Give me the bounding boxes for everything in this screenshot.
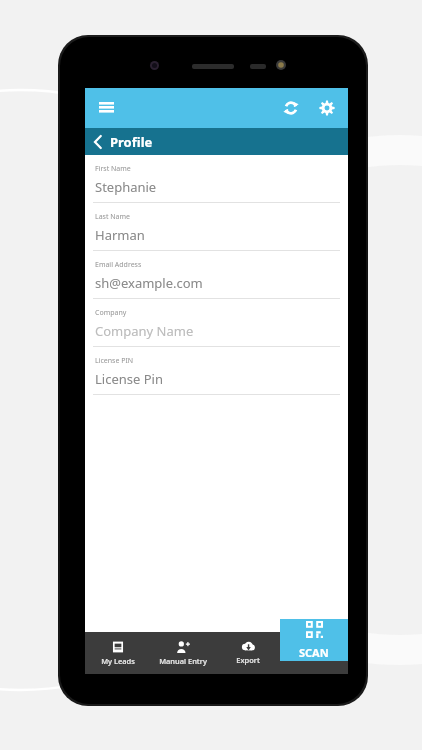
staticText: License PIN — [95, 356, 134, 366]
staticText: Harman — [95, 226, 145, 244]
button[interactable]: SCAN — [280, 619, 348, 661]
staticText: sh@example.com — [95, 274, 203, 292]
button[interactable]: Profile — [85, 128, 348, 155]
staticText: Profile — [110, 133, 153, 151]
staticText: Email Address — [95, 260, 142, 270]
staticText: First Name — [95, 164, 131, 174]
staticText: License Pin — [95, 370, 163, 388]
button[interactable]: Menu — [90, 92, 122, 124]
staticText: Manual Entry — [159, 656, 207, 666]
button[interactable]: Sync — [276, 93, 306, 123]
button[interactable]: Settings — [312, 93, 342, 123]
staticText: Company Name — [95, 322, 194, 340]
staticText: Company — [95, 308, 127, 318]
button[interactable]: My Leads — [85, 632, 150, 674]
staticText: SCAN — [299, 645, 329, 660]
button[interactable]: Manual Entry — [150, 632, 215, 674]
staticText: Stephanie — [95, 178, 157, 196]
staticText: Export — [236, 655, 260, 665]
button[interactable]: Export — [215, 632, 280, 674]
staticText: My Leads — [101, 656, 135, 666]
staticText: Last Name — [95, 212, 131, 222]
